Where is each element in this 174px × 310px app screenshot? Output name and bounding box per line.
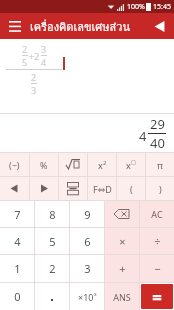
button[interactable]: ÷	[140, 228, 174, 254]
staticText: □	[131, 159, 136, 165]
button[interactable]: %	[30, 153, 58, 176]
staticText: 4	[14, 234, 21, 249]
button[interactable]: Back	[149, 16, 169, 36]
button[interactable]: AC	[140, 201, 174, 227]
staticText: π	[157, 159, 163, 171]
staticText: +	[119, 261, 126, 276]
button[interactable]: 6	[70, 228, 104, 254]
button[interactable]: Delete	[105, 201, 139, 227]
staticText: 2	[31, 71, 37, 83]
button[interactable]: )	[146, 177, 174, 200]
button[interactable]: 8	[35, 201, 69, 227]
staticText: 3	[31, 84, 37, 96]
button[interactable]: ×10	[70, 283, 104, 310]
staticText: F⇔D	[93, 183, 112, 195]
staticText: 6	[84, 234, 91, 249]
button[interactable]: 0	[0, 283, 34, 310]
button[interactable]: Equals	[141, 284, 173, 309]
staticText: 5	[49, 234, 56, 249]
staticText: 8	[49, 207, 56, 222]
button[interactable]: Move right	[30, 177, 58, 200]
staticText: ×	[119, 234, 126, 249]
button[interactable]: 4	[0, 228, 34, 254]
button[interactable]: (	[117, 177, 145, 200]
button[interactable]: 2	[35, 255, 69, 282]
button[interactable]: π	[146, 153, 174, 176]
staticText: 5	[22, 56, 28, 68]
button[interactable]: x	[88, 153, 116, 176]
button[interactable]: Square root	[59, 153, 87, 176]
button[interactable]: −	[140, 255, 174, 282]
staticText: 9	[84, 207, 91, 222]
staticText: 15:45	[153, 2, 171, 12]
button[interactable]: +	[105, 255, 139, 282]
staticText: 29	[150, 115, 165, 133]
staticText: 2	[49, 261, 56, 276]
staticText: x	[126, 159, 131, 171]
staticText: ÷	[154, 234, 161, 249]
staticText: 0	[14, 289, 21, 304]
staticText: 3	[84, 261, 91, 276]
button[interactable]: 9	[70, 201, 104, 227]
staticText: 40	[150, 134, 165, 152]
staticText: )	[159, 183, 162, 195]
button[interactable]: 1	[0, 255, 34, 282]
staticText: (	[130, 183, 133, 195]
button[interactable]: Move left	[0, 177, 29, 200]
button[interactable]: 5	[35, 228, 69, 254]
staticText: 100%	[127, 2, 145, 12]
button[interactable]: ANS	[105, 283, 139, 310]
staticText: −	[154, 261, 161, 276]
button[interactable]: F⇔D	[88, 177, 116, 200]
staticText: (−)	[9, 159, 20, 171]
staticText: x	[98, 159, 103, 171]
staticText: ANS	[113, 291, 131, 303]
staticText: AC	[151, 208, 163, 220]
staticText: 4	[139, 127, 147, 145]
button[interactable]	[35, 283, 69, 310]
staticText: 2	[22, 43, 28, 55]
staticText: x	[94, 291, 97, 298]
staticText: ×10	[78, 291, 94, 303]
button[interactable]: 7	[0, 201, 34, 227]
button[interactable]: Fraction	[59, 177, 87, 200]
staticText: %	[40, 159, 48, 171]
staticText: 7	[14, 207, 21, 222]
button[interactable]: x	[117, 153, 145, 176]
staticText: 4	[41, 56, 47, 68]
button[interactable]: 3	[70, 255, 104, 282]
button[interactable]: (−)	[0, 153, 29, 176]
staticText: 1	[14, 261, 21, 276]
button[interactable]: ×	[105, 228, 139, 254]
staticText: 3	[41, 43, 47, 55]
staticText: 2	[103, 159, 107, 167]
button[interactable]: Menu	[5, 16, 25, 36]
staticText: เครื่องคิดเลขเศษส่วน	[30, 18, 130, 35]
staticText: +2	[29, 50, 40, 62]
